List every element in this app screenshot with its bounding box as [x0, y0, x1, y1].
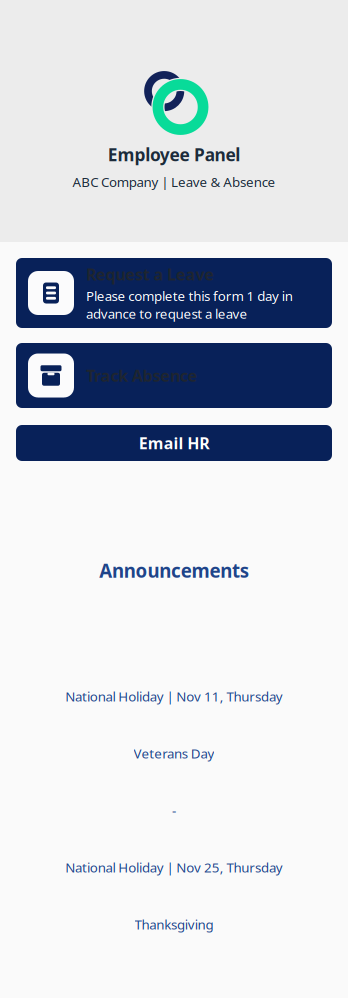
staticText: Announcements: [99, 558, 249, 583]
staticText: National Holiday | Nov 25, Thursday: [65, 858, 283, 876]
staticText: Please complete this form 1 day in advan…: [86, 287, 293, 322]
staticText: Track Absence: [86, 365, 198, 386]
staticText: Request a Leave: [86, 264, 214, 285]
staticText: -: [172, 801, 176, 819]
staticText: Veterans Day: [133, 744, 214, 762]
button[interactable]: Request a Leave: [16, 258, 332, 328]
button[interactable]: Email HR: [16, 425, 332, 461]
staticText: National Holiday | Nov 11, Thursday: [65, 687, 283, 705]
button[interactable]: Track Absence: [16, 343, 332, 408]
staticText: Thanksgiving: [134, 915, 213, 933]
staticText: ABC Company | Leave & Absence: [72, 173, 276, 191]
staticText: Email HR: [139, 432, 209, 454]
staticText: Employee Panel: [108, 143, 240, 166]
